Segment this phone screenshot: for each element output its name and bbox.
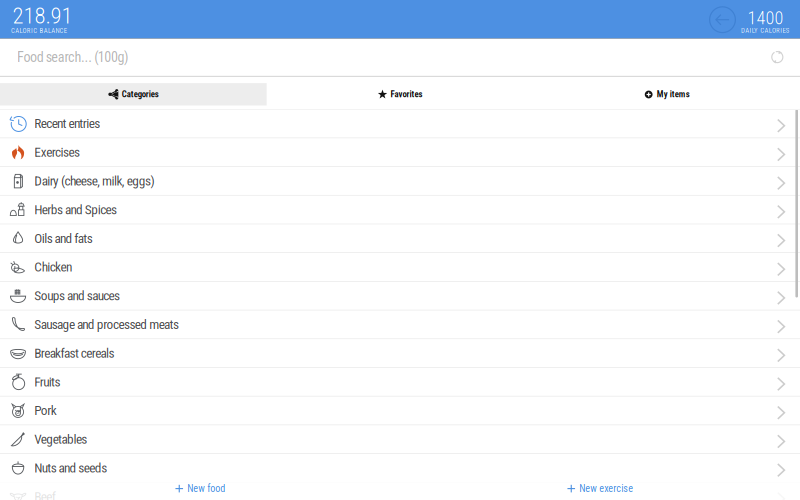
staticText: Fruits: [34, 374, 61, 390]
button[interactable]: Soups and sauces: [0, 282, 800, 310]
button[interactable]: Exercises: [0, 138, 800, 167]
button[interactable]: Breakfast cereals: [0, 339, 800, 368]
button[interactable]: New exercise: [400, 477, 800, 500]
staticText: Breakfast cereals: [34, 345, 114, 361]
button[interactable]: New food: [0, 477, 400, 500]
staticText: Food search... (100g): [17, 49, 129, 65]
staticText: 1400: [747, 7, 783, 29]
staticText: Dairy (cheese, milk, eggs): [34, 173, 155, 189]
button[interactable]: Chicken: [0, 253, 800, 282]
staticText: 218.91: [12, 2, 72, 29]
staticText: Sausage and processed meats: [34, 317, 179, 332]
button[interactable]: Sausage and processed meats: [0, 310, 800, 339]
button[interactable]: Dairy (cheese, milk, eggs): [0, 167, 800, 196]
button[interactable]: Nuts and seeds: [0, 454, 800, 483]
button[interactable]: Pork: [0, 396, 800, 425]
button[interactable]: Herbs and Spices: [0, 196, 800, 224]
button[interactable]: Beef: [0, 483, 800, 500]
staticText: Herbs and Spices: [34, 202, 117, 217]
staticText: Beef: [34, 489, 56, 500]
button[interactable]: Back: [708, 6, 736, 34]
button[interactable]: Refresh: [769, 48, 800, 66]
staticText: Categories: [122, 89, 159, 99]
button[interactable]: Categories: [0, 83, 267, 105]
button[interactable]: Fruits: [0, 368, 800, 396]
button[interactable]: Oils and fats: [0, 224, 800, 253]
staticText: Vegetables: [34, 431, 87, 447]
staticText: My items: [657, 89, 690, 99]
button[interactable]: Favorites: [267, 83, 533, 105]
button[interactable]: My items: [533, 83, 800, 105]
staticText: Chicken: [34, 259, 72, 275]
staticText: Recent entries: [34, 116, 100, 131]
staticText: DAILY CALORIES: [741, 26, 790, 34]
staticText: New food: [187, 483, 225, 494]
staticText: Nuts and seeds: [34, 460, 107, 476]
staticText: Pork: [34, 403, 57, 418]
staticText: CALORIC BALANCE: [11, 27, 67, 35]
staticText: Soups and sauces: [34, 288, 120, 303]
button[interactable]: Vegetables: [0, 425, 800, 454]
button[interactable]: Recent entries: [0, 109, 800, 138]
staticText: Favorites: [390, 89, 422, 99]
staticText: New exercise: [579, 483, 633, 494]
staticText: Exercises: [34, 144, 80, 160]
staticText: Oils and fats: [34, 230, 93, 246]
